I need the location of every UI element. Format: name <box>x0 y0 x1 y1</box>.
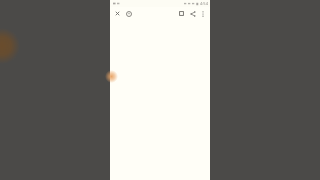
button[interactable]: Close <box>113 9 122 18</box>
staticText: 4:54 <box>200 1 208 6</box>
button[interactable]: More options <box>198 9 207 18</box>
button[interactable]: Page info <box>124 9 133 18</box>
button[interactable]: Save <box>177 9 186 18</box>
button[interactable]: Share <box>188 9 197 18</box>
